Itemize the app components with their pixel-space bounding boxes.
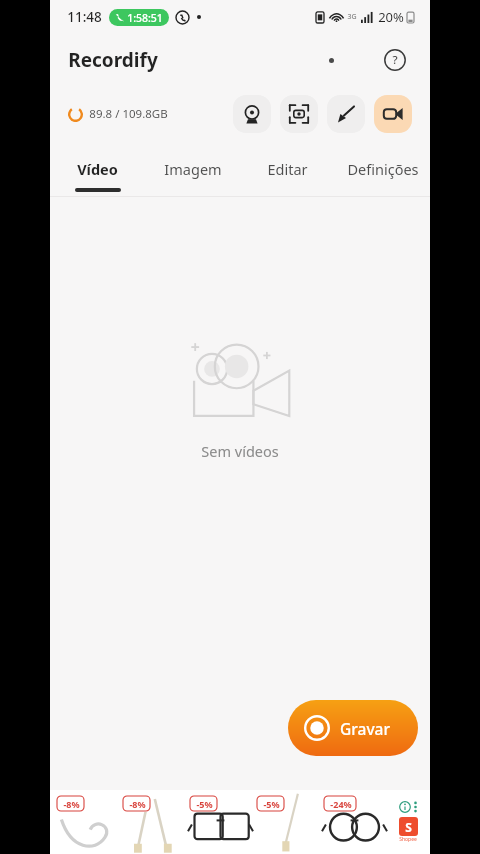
staticText: 20% — [378, 8, 404, 26]
staticText: Shopee — [399, 836, 417, 843]
staticText: ? — [392, 52, 398, 68]
button[interactable]: Ação — [327, 95, 365, 133]
staticText: -5% — [196, 798, 213, 810]
staticText: -24% — [330, 798, 352, 810]
button[interactable]: Ajuda — [380, 45, 410, 75]
button[interactable]: Ação — [280, 95, 318, 133]
button[interactable]: Definições — [335, 142, 430, 196]
staticText: Sem vídeos — [201, 441, 279, 461]
staticText: Recordify — [68, 47, 158, 73]
staticText: Editar — [267, 159, 308, 179]
staticText: 1:58:51 — [127, 11, 163, 25]
button[interactable]: Gravar — [288, 700, 418, 756]
staticText: Gravar — [340, 718, 390, 739]
button[interactable]: Editar — [240, 142, 335, 196]
button[interactable]: 89.8 / 109.8GB — [68, 106, 168, 122]
staticText: S — [405, 819, 412, 835]
staticText: Vídeo — [77, 159, 118, 179]
staticText: -8% — [63, 798, 80, 810]
staticText: -8% — [129, 798, 146, 810]
button[interactable]: Ação — [233, 95, 271, 133]
staticText: 3G — [347, 12, 357, 22]
button[interactable]: Imagem — [145, 142, 240, 196]
staticText: Definições — [347, 159, 419, 179]
button[interactable]: Vídeo — [50, 142, 145, 196]
staticText: -5% — [263, 798, 280, 810]
staticText: 11:48 — [67, 8, 102, 26]
staticText: Imagem — [164, 159, 222, 179]
button[interactable]: Ação — [374, 95, 412, 133]
button[interactable]: Anúncio — [50, 790, 430, 854]
staticText: 89.8 / 109.8GB — [89, 106, 168, 122]
